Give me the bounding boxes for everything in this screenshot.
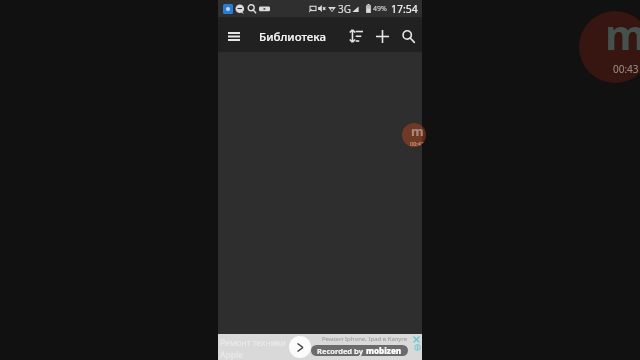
button[interactable]: Open advertisement — [289, 336, 311, 358]
staticText: Любой сложности. Бесплат.. — [322, 344, 404, 352]
staticText: Ремонт техники — [220, 337, 286, 349]
staticText: 17:54 — [391, 2, 418, 16]
staticText: 3G — [338, 2, 351, 16]
staticText: Apple — [220, 349, 243, 360]
button[interactable]: Mobizen recorder — [402, 123, 426, 147]
staticText: Ремонт Iphone, Ipad в Калуге — [322, 335, 408, 343]
button[interactable]: Close advertisement — [413, 336, 420, 343]
staticText: 49% — [373, 4, 387, 14]
button[interactable]: Add — [369, 19, 395, 53]
staticText: 00:43 — [410, 140, 425, 146]
button[interactable]: Mobizen recorder overlay — [579, 11, 640, 83]
staticText: Recorded by — [317, 346, 363, 356]
staticText: mobizen — [366, 345, 402, 356]
button[interactable]: Search — [395, 19, 421, 53]
button[interactable]: Sort — [343, 19, 369, 53]
staticText: 00:43 — [613, 62, 639, 76]
staticText: m — [411, 123, 424, 140]
button[interactable]: Navigation menu — [222, 17, 246, 51]
button[interactable]: Advertisement info — [414, 344, 421, 351]
staticText: Библиотека — [259, 29, 326, 45]
staticText: m — [605, 11, 640, 62]
